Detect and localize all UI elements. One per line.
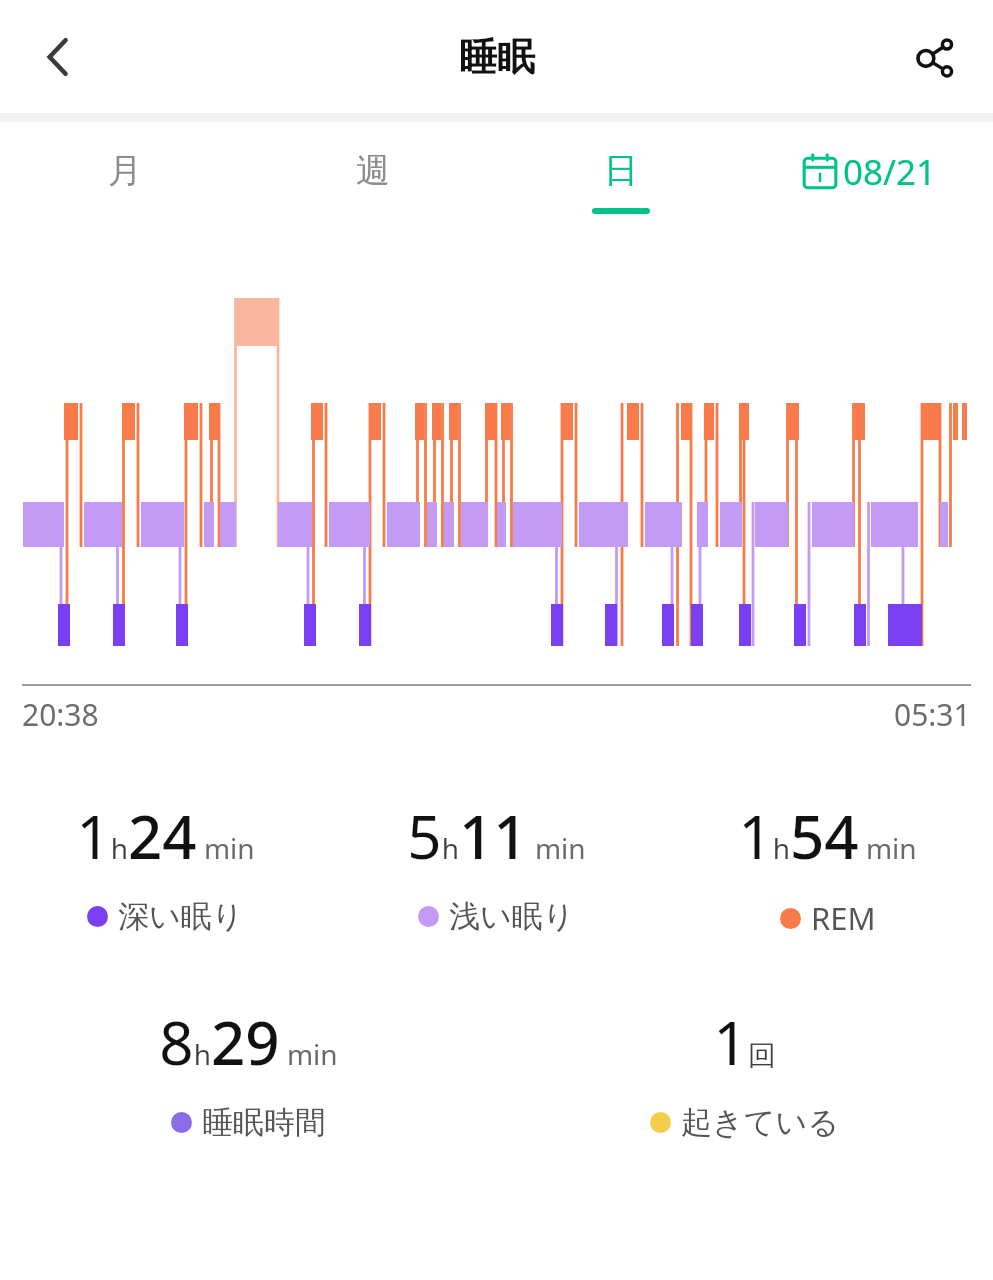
staticText: 05:31	[894, 694, 971, 735]
staticText: 睡眠時間	[202, 1103, 326, 1142]
button[interactable]: 1h54 min	[662, 795, 993, 939]
button[interactable]: 1回	[496, 1001, 993, 1142]
staticText: 08/21	[843, 148, 937, 196]
staticText: 月	[108, 149, 142, 192]
staticText: 起きている	[681, 1103, 839, 1142]
button[interactable]: 08/21	[745, 122, 993, 240]
staticText: 5h11 min	[407, 795, 586, 877]
button[interactable]: 日	[497, 122, 745, 240]
staticText: 1回	[713, 1001, 776, 1083]
staticText: 深い眠り	[118, 897, 244, 936]
staticText: 睡眠	[459, 33, 535, 81]
staticText: 8h29 min	[159, 1001, 338, 1083]
staticText: 日	[604, 149, 638, 192]
staticText: REM	[811, 897, 876, 939]
button[interactable]: 1h24 min	[0, 795, 331, 936]
button[interactable]: 月	[0, 122, 249, 240]
button[interactable]: Back	[20, 19, 96, 95]
staticText: 20:38	[22, 694, 99, 735]
button[interactable]: 5h11 min	[331, 795, 662, 936]
button[interactable]: 8h29 min	[0, 1001, 496, 1142]
staticText: 1h54 min	[738, 795, 917, 877]
button[interactable]: Share	[897, 19, 973, 95]
button[interactable]: 週	[249, 122, 497, 240]
staticText: 浅い眠り	[449, 897, 575, 936]
staticText: 週	[356, 149, 390, 192]
staticText: 1h24 min	[76, 795, 255, 877]
